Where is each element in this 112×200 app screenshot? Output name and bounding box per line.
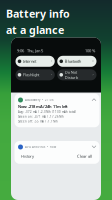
staticText: 100 % xyxy=(85,48,95,53)
staticText: Screen off: -55 mA / -1.1%/h xyxy=(18,120,58,123)
staticText: AccuBattery • 21:06 xyxy=(25,98,54,102)
staticText: Clear all xyxy=(77,153,92,159)
staticText: Screen on: -471 mA / -17.26%/h xyxy=(18,115,64,118)
staticText: at a glance xyxy=(6,23,64,37)
button[interactable]: AVG AntiVirus • now xyxy=(18,144,96,149)
button[interactable]: Do Not Disturb xyxy=(57,69,96,80)
button[interactable]: Bluetooth xyxy=(57,56,96,67)
staticText: Internet xyxy=(23,59,36,64)
staticText: > xyxy=(92,59,94,63)
button[interactable]: Flashlight xyxy=(15,69,55,80)
button[interactable]: AccuBattery • 21:06 xyxy=(14,93,99,127)
button[interactable]: History xyxy=(18,152,37,160)
staticText: AVG AntiVirus • now xyxy=(25,145,56,149)
staticText: > xyxy=(50,59,52,63)
staticText: Flashlight xyxy=(23,72,39,77)
staticText: Avg: -372 mA / -2.3%/h (1130 mAh total) xyxy=(18,110,76,114)
staticText: 9:06 Thu, Jan 5 xyxy=(17,48,43,53)
staticText: Now: -218 mA/24h 11m left xyxy=(18,104,68,109)
staticText: History xyxy=(21,153,34,159)
staticText: Battery info xyxy=(6,6,70,21)
staticText: > xyxy=(51,73,53,76)
button[interactable]: Clear all xyxy=(73,152,96,160)
button[interactable]: Internet xyxy=(15,56,55,67)
staticText: Do Not Disturb xyxy=(65,69,78,80)
staticText: Bluetooth xyxy=(65,59,81,64)
staticText: > xyxy=(92,73,94,76)
